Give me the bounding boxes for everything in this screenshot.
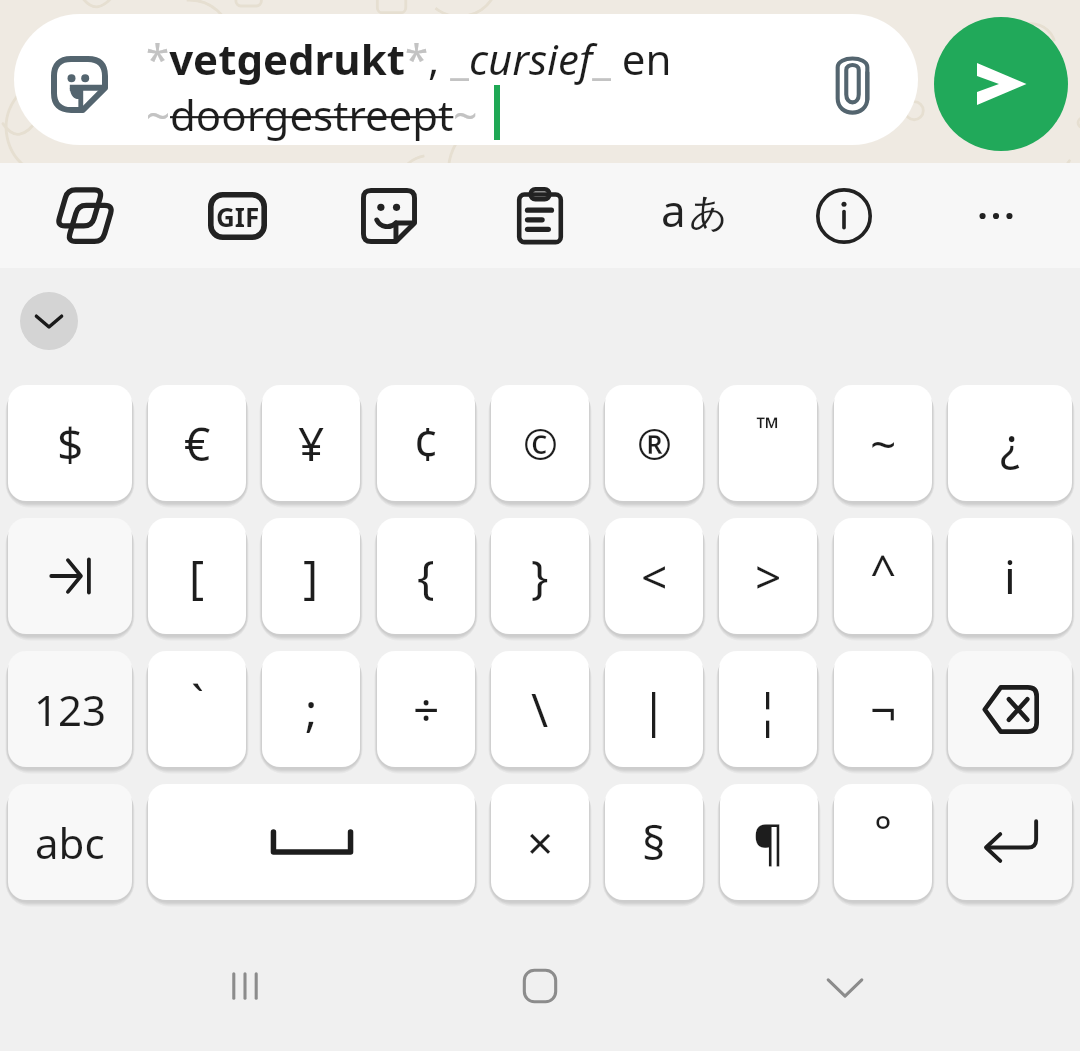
button[interactable]: Tab: [8, 518, 132, 634]
button[interactable]: abc: [8, 784, 132, 900]
button[interactable]: Enter: [948, 784, 1072, 900]
button[interactable]: ¥: [262, 385, 360, 501]
staticText: ÷: [413, 678, 440, 741]
staticText: `: [191, 670, 204, 733]
button[interactable]: ]: [262, 518, 360, 634]
button[interactable]: Emoji and stickers: [14, 14, 918, 145]
staticText: i: [1004, 545, 1016, 608]
button[interactable]: ®: [605, 385, 703, 501]
staticText: \: [531, 678, 549, 741]
button[interactable]: ;: [262, 651, 360, 767]
button[interactable]: ¿: [948, 385, 1072, 501]
button[interactable]: ÷: [377, 651, 475, 767]
staticText: §: [642, 811, 666, 874]
staticText: abc: [35, 814, 105, 871]
button[interactable]: Emoji and stickers: [37, 42, 122, 127]
staticText: ;: [305, 678, 318, 741]
button[interactable]: ¶: [720, 784, 818, 900]
button[interactable]: ©: [491, 385, 589, 501]
button[interactable]: Home: [480, 921, 600, 1051]
staticText: ]: [303, 545, 319, 608]
button[interactable]: Sticker maker: [335, 163, 443, 268]
staticText: {: [417, 545, 435, 608]
staticText: >: [755, 545, 782, 608]
button[interactable]: GIF: [183, 163, 291, 268]
button[interactable]: ¬: [834, 651, 932, 767]
button[interactable]: Recent apps: [185, 921, 305, 1051]
button[interactable]: More options: [942, 163, 1050, 268]
staticText: ~: [870, 412, 897, 475]
button[interactable]: `: [148, 651, 246, 767]
button[interactable]: Info: [790, 163, 898, 268]
staticText: <: [641, 545, 668, 608]
button[interactable]: ¢: [377, 385, 475, 501]
staticText: ¬: [870, 678, 897, 741]
button[interactable]: [: [148, 518, 246, 634]
staticText: °: [874, 802, 892, 859]
staticText: [: [189, 545, 205, 608]
button[interactable]: \: [491, 651, 589, 767]
staticText: $: [57, 412, 84, 475]
staticText: €: [184, 412, 211, 475]
button[interactable]: $: [8, 385, 132, 501]
button[interactable]: ™: [719, 385, 817, 501]
button[interactable]: }: [491, 518, 589, 634]
button[interactable]: ¦: [719, 651, 817, 767]
button[interactable]: Space: [148, 784, 475, 900]
staticText: ¿: [1000, 412, 1020, 475]
button[interactable]: Send: [934, 17, 1068, 151]
button[interactable]: Translate: [638, 163, 746, 268]
staticText: ¢: [413, 412, 440, 475]
staticText: ¦: [755, 678, 781, 741]
staticText: ®: [637, 415, 672, 472]
staticText: ™: [756, 407, 780, 448]
button[interactable]: Attach: [810, 43, 894, 127]
button[interactable]: ^: [834, 518, 932, 634]
button[interactable]: €: [148, 385, 246, 501]
staticText: ¥: [298, 412, 325, 475]
staticText: ^: [870, 539, 897, 602]
button[interactable]: Clipboard: [486, 163, 594, 268]
button[interactable]: Backspace: [948, 651, 1072, 767]
button[interactable]: i: [948, 518, 1072, 634]
button[interactable]: Stickers: [31, 163, 139, 268]
button[interactable]: ~: [834, 385, 932, 501]
staticText: *vetgedrukt*, _cursief_ en ~doorgestreep…: [146, 30, 826, 143]
button[interactable]: |: [605, 651, 703, 767]
staticText: GIF: [216, 199, 260, 234]
staticText: 123: [34, 681, 107, 738]
staticText: ¶: [753, 810, 785, 875]
staticText: ×: [527, 811, 554, 874]
button[interactable]: 123: [8, 651, 132, 767]
staticText: あ: [689, 188, 728, 236]
button[interactable]: Hide keyboard: [785, 921, 905, 1051]
button[interactable]: {: [377, 518, 475, 634]
button[interactable]: Collapse keyboard: [20, 292, 78, 350]
button[interactable]: >: [719, 518, 817, 634]
button[interactable]: °: [834, 784, 932, 900]
staticText: }: [531, 545, 549, 608]
button[interactable]: §: [605, 784, 703, 900]
button[interactable]: ×: [491, 784, 589, 900]
staticText: |: [641, 678, 667, 741]
staticText: a: [661, 180, 686, 236]
button[interactable]: <: [605, 518, 703, 634]
staticText: ©: [523, 415, 558, 472]
